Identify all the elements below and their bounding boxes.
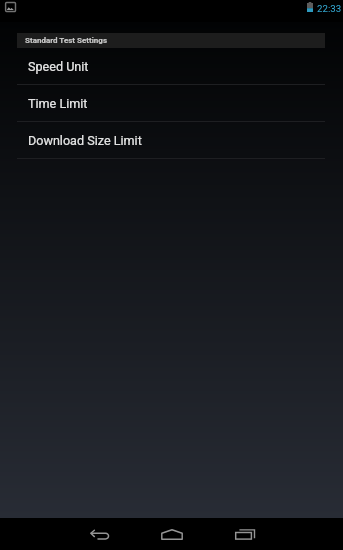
- staticText: Download Size Limit: [28, 133, 142, 148]
- staticText: Speed Unit: [28, 59, 89, 74]
- button[interactable]: Time Limit: [0, 85, 343, 122]
- button[interactable]: Back: [75, 518, 123, 550]
- button[interactable]: Recent apps: [221, 518, 269, 550]
- staticText: 22:33: [317, 3, 342, 14]
- button[interactable]: Speed Unit: [0, 48, 343, 85]
- staticText: Standard Test Settings: [25, 36, 107, 45]
- staticText: Time Limit: [28, 96, 88, 111]
- button[interactable]: Home: [148, 518, 196, 550]
- button[interactable]: Download Size Limit: [0, 122, 343, 159]
